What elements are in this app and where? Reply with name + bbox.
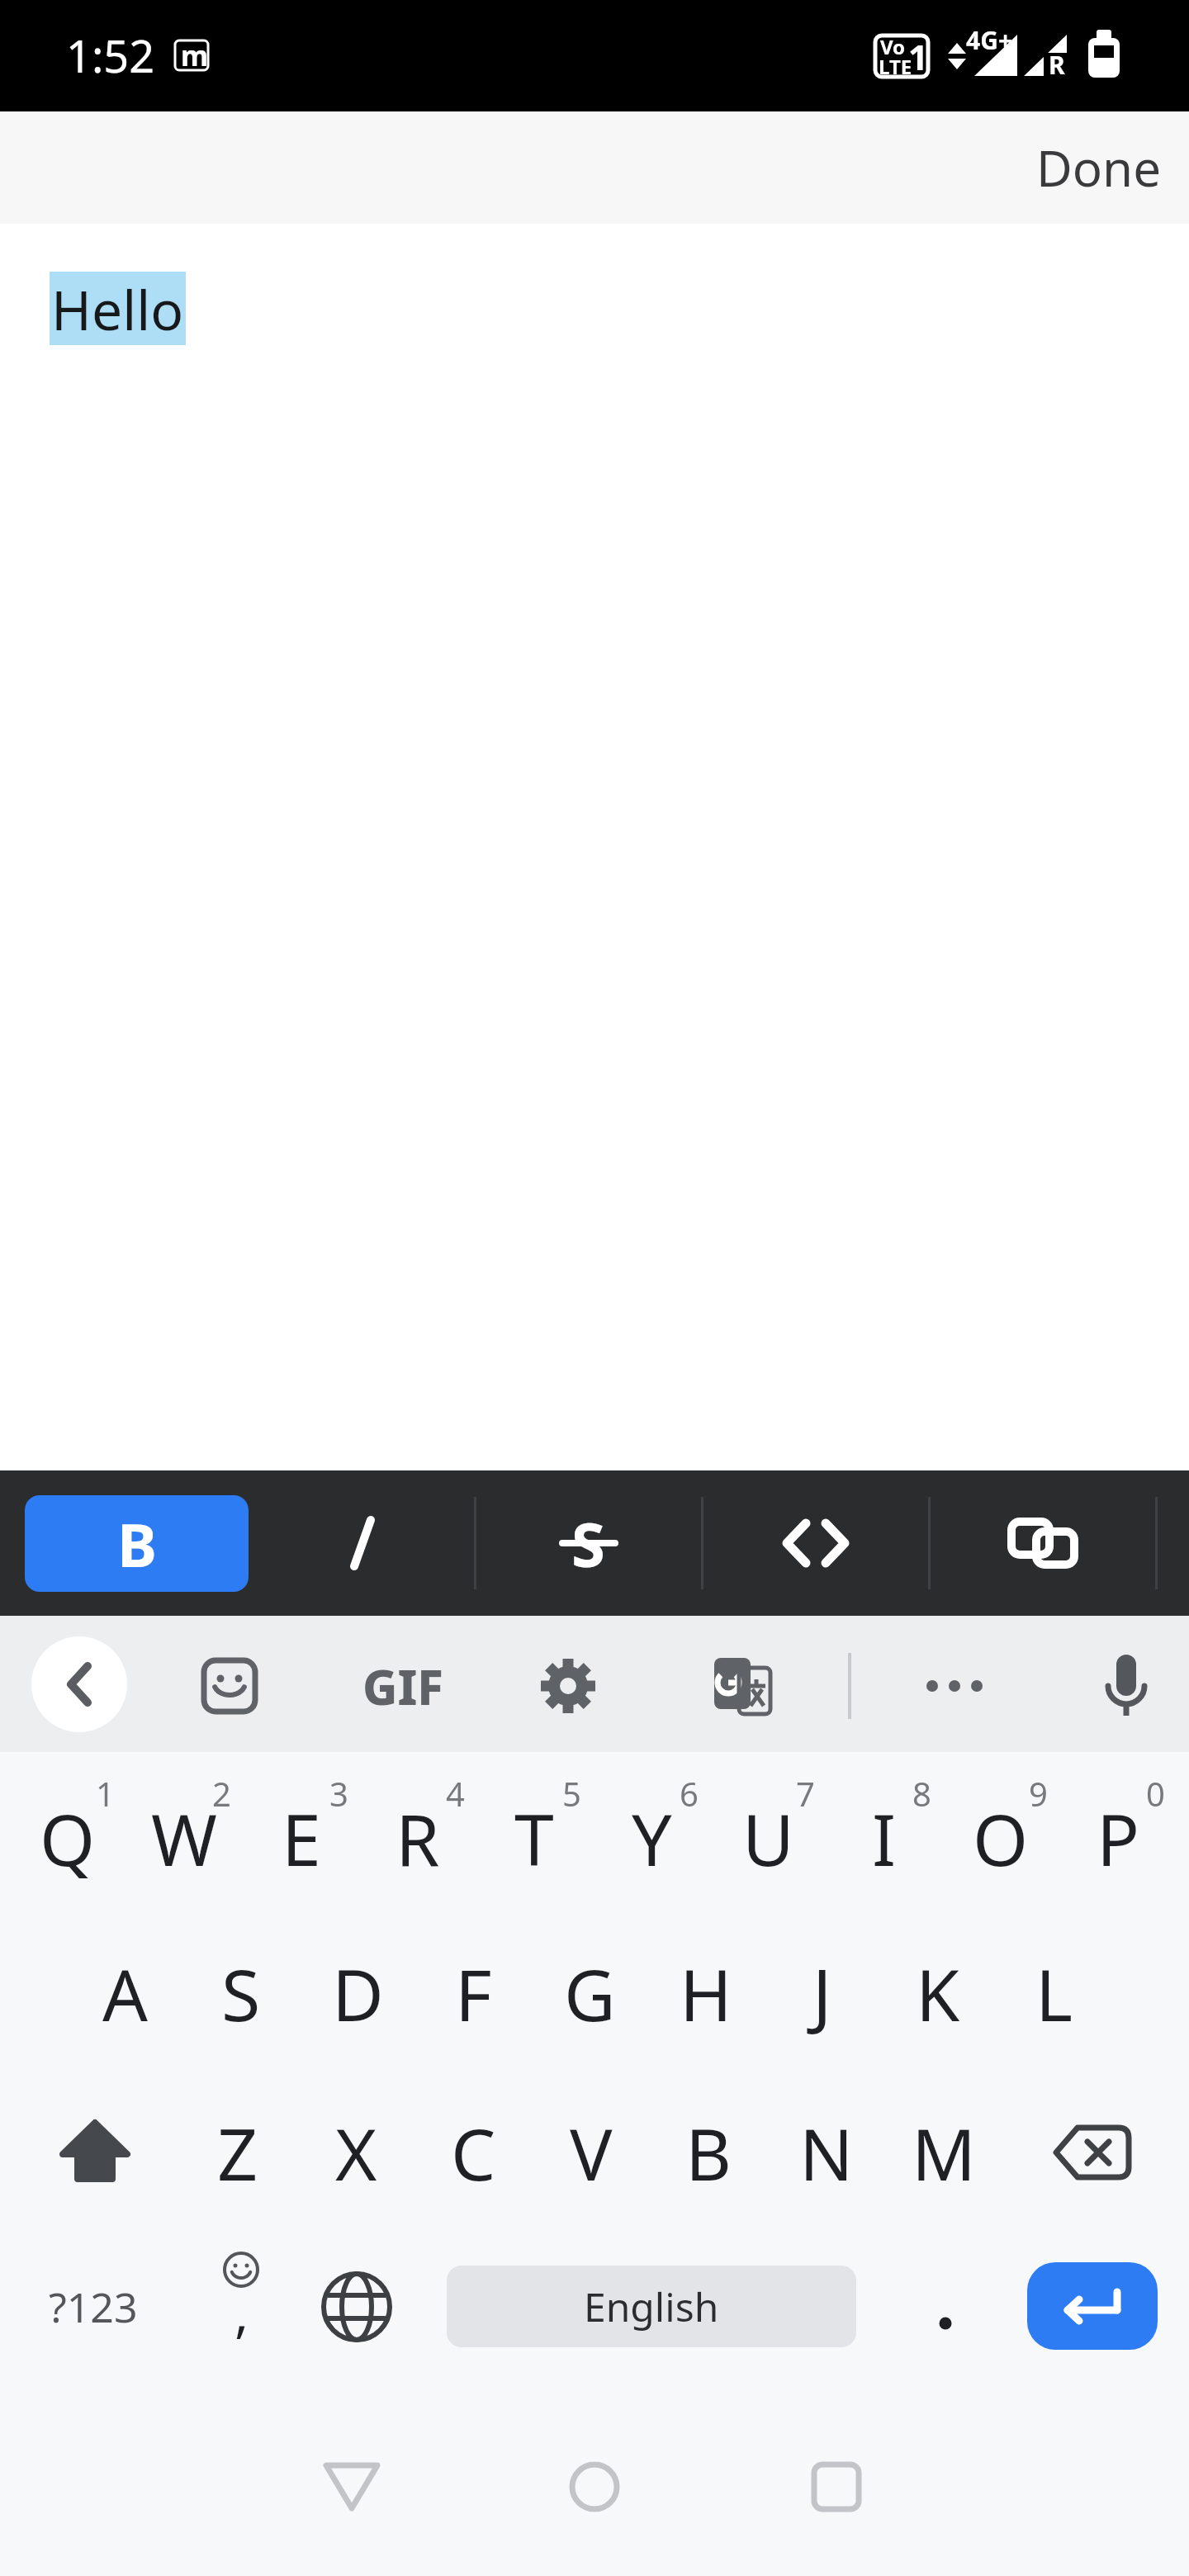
staticText: Done <box>1036 134 1162 201</box>
button[interactable] <box>180 1636 279 1735</box>
button[interactable]: M <box>886 2074 1002 2231</box>
button[interactable]: D <box>300 1915 415 2072</box>
staticText: 4G+ <box>966 23 1013 57</box>
staticText: Vo <box>880 33 906 60</box>
staticText: S <box>571 1502 605 1585</box>
button[interactable]: G <box>532 1915 647 2072</box>
button[interactable] <box>183 2218 299 2375</box>
button[interactable] <box>1027 2262 1158 2350</box>
button[interactable]: X <box>298 2074 414 2231</box>
staticText: C <box>451 2105 496 2201</box>
staticText: R <box>1049 48 1065 82</box>
button[interactable]: Z <box>180 2074 296 2231</box>
button[interactable]: F <box>415 1915 531 2072</box>
staticText: N <box>799 2105 854 2201</box>
button[interactable]: English <box>447 2266 856 2347</box>
button[interactable] <box>779 2429 894 2545</box>
button[interactable]: Y <box>594 1758 709 1918</box>
staticText: 7 <box>796 1771 815 1816</box>
staticText: A <box>102 1945 148 2042</box>
staticText: LTE <box>879 53 912 80</box>
staticText: R <box>396 1790 440 1887</box>
staticText: W <box>151 1790 217 1887</box>
button[interactable]: P <box>1060 1758 1176 1918</box>
button[interactable]: O <box>943 1758 1059 1918</box>
staticText: GIF <box>362 1654 443 1719</box>
button[interactable] <box>519 1636 618 1735</box>
staticText: X <box>335 2105 377 2201</box>
staticText: B <box>117 1503 157 1584</box>
button[interactable]: L <box>997 1915 1112 2072</box>
button[interactable] <box>249 1470 475 1616</box>
button[interactable]: S <box>183 1915 299 2072</box>
button[interactable] <box>694 1636 793 1735</box>
staticText: 4 <box>446 1771 465 1816</box>
staticText: 9 <box>1029 1771 1048 1816</box>
button[interactable]: C <box>415 2074 531 2231</box>
staticText: Q <box>40 1790 96 1887</box>
staticText: 3 <box>329 1771 348 1816</box>
button[interactable]: B <box>651 2074 766 2231</box>
staticText: 8 <box>912 1771 931 1816</box>
button[interactable] <box>1018 2074 1167 2231</box>
staticText: J <box>812 1945 832 2042</box>
button[interactable] <box>929 1470 1156 1616</box>
button[interactable] <box>1081 1636 1172 1735</box>
staticText: L <box>1035 1945 1073 2042</box>
staticText: U <box>742 1790 794 1887</box>
button[interactable]: W <box>126 1758 242 1918</box>
button[interactable] <box>299 2228 414 2385</box>
staticText: V <box>570 2105 613 2201</box>
button[interactable]: GIF <box>341 1636 465 1735</box>
staticText: m <box>181 36 209 74</box>
staticText: F <box>455 1945 492 2042</box>
staticText: 1 <box>96 1771 115 1816</box>
staticText: B <box>685 2105 732 2201</box>
button[interactable]: I <box>827 1758 942 1918</box>
staticText: I <box>872 1790 897 1887</box>
staticText: , <box>234 2276 249 2348</box>
staticText: T <box>514 1790 554 1887</box>
staticText: K <box>916 1945 960 2042</box>
staticText: Y <box>632 1790 672 1887</box>
button[interactable] <box>537 2429 652 2545</box>
button[interactable]: R <box>360 1758 476 1918</box>
staticText: S <box>221 1945 261 2042</box>
staticText: 5 <box>562 1771 581 1816</box>
button[interactable]: E <box>244 1758 359 1918</box>
staticText: G <box>564 1945 616 2042</box>
button[interactable]: V <box>533 2074 649 2231</box>
button[interactable]: T <box>476 1758 592 1918</box>
button[interactable]: A <box>67 1915 182 2072</box>
button[interactable]: Done <box>1036 134 1189 201</box>
staticText: 0 <box>1146 1771 1165 1816</box>
staticText: M <box>912 2105 977 2201</box>
button[interactable]: U <box>710 1758 826 1918</box>
staticText: 1 <box>908 33 929 80</box>
button[interactable]: B <box>25 1495 249 1592</box>
staticText: H <box>680 1945 732 2042</box>
staticText: English <box>584 2280 719 2333</box>
staticText: 6 <box>680 1771 699 1816</box>
button[interactable] <box>702 1470 929 1616</box>
staticText: Hello <box>51 272 184 345</box>
button[interactable]: K <box>880 1915 996 2072</box>
staticText: ?123 <box>49 2279 138 2335</box>
staticText: E <box>282 1790 321 1887</box>
button[interactable]: S <box>475 1470 702 1616</box>
button[interactable]: J <box>765 1915 880 2072</box>
staticText: Z <box>217 2105 258 2201</box>
staticText: 1:52 <box>66 25 155 86</box>
button[interactable]: H <box>648 1915 764 2072</box>
button[interactable]: ?123 <box>15 2228 172 2385</box>
button[interactable] <box>31 1636 127 1732</box>
staticText: 2 <box>212 1771 231 1816</box>
button[interactable]: Q <box>10 1758 126 1918</box>
staticText: P <box>1097 1790 1140 1887</box>
button[interactable] <box>294 2429 410 2545</box>
button[interactable]: N <box>769 2074 884 2231</box>
staticText: D <box>332 1945 384 2042</box>
button[interactable] <box>21 2074 169 2231</box>
staticText: O <box>973 1790 1029 1887</box>
button[interactable] <box>901 1636 1008 1735</box>
